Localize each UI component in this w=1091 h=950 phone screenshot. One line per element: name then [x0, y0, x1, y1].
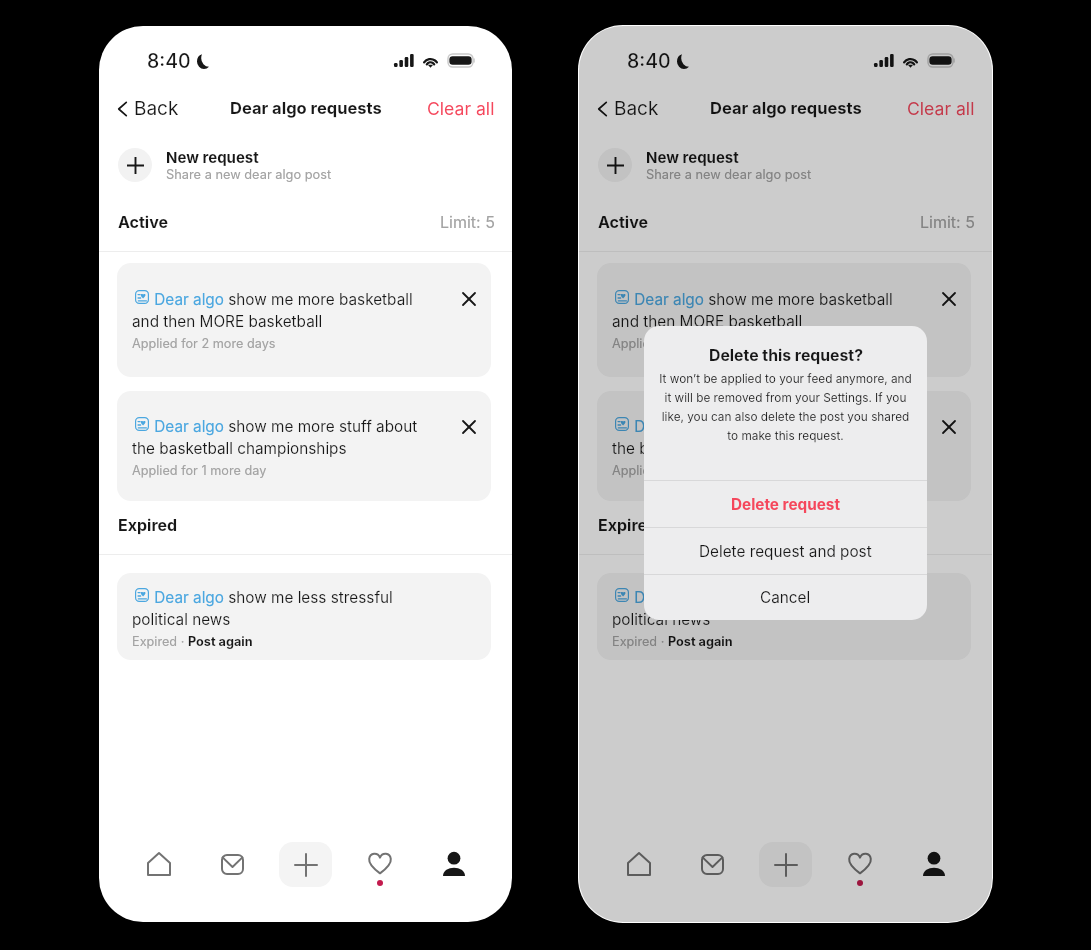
button[interactable]: Profile: [910, 840, 958, 888]
staticText: Expired · Post again: [612, 634, 733, 649]
button[interactable]: Delete request: [445, 286, 491, 312]
button[interactable]: Messages: [688, 840, 736, 888]
staticText: Active: [118, 212, 169, 231]
staticText: Delete request: [731, 495, 841, 514]
staticText: Clear all: [427, 98, 495, 119]
staticText: Applied for 1 more day: [612, 463, 747, 478]
staticText: Expired: [118, 515, 178, 534]
button[interactable]: Home: [135, 840, 183, 888]
staticText: It won’t be applied to your feed anymore…: [658, 372, 913, 443]
button[interactable]: Delete request and post: [644, 528, 927, 574]
staticText: 8:40: [147, 49, 191, 73]
staticText: Dear algo requests: [230, 98, 382, 118]
button[interactable]: [] Dear algo show me less stressful poli…: [597, 573, 971, 660]
staticText: Share a new dear algo post: [166, 167, 332, 182]
staticText: Limit: 5: [440, 212, 495, 231]
staticText: Applied for 2 more days: [132, 336, 276, 351]
button[interactable]: Delete request: [925, 414, 971, 440]
button[interactable]: Back: [579, 89, 669, 128]
staticText: Expired: [598, 515, 658, 534]
staticText: Dear algo requests: [710, 98, 862, 118]
staticText: Delete this request?: [709, 346, 863, 365]
button[interactable]: Activity: [836, 845, 884, 893]
button[interactable]: Profile: [430, 840, 478, 888]
button[interactable]: Delete request: [445, 414, 491, 440]
button[interactable]: Cancel: [644, 575, 927, 620]
staticText: Clear all: [907, 98, 975, 119]
staticText: New request: [646, 148, 739, 166]
button[interactable]: Clear all: [417, 90, 512, 127]
staticText: Back: [614, 97, 659, 120]
button[interactable]: New request: [579, 135, 992, 195]
staticText: Cancel: [760, 588, 811, 607]
staticText: [] Dear algo show me more basketball and…: [132, 290, 437, 331]
button[interactable]: [] Dear algo show me more stuff about th…: [597, 391, 971, 501]
staticText: Active: [598, 212, 649, 231]
staticText: [] Dear algo show me more stuff about th…: [132, 417, 437, 458]
staticText: Back: [134, 97, 179, 120]
staticText: Limit: 5: [920, 212, 975, 231]
button[interactable]: Back: [99, 89, 189, 128]
staticText: 8:40: [627, 49, 671, 73]
staticText: Applied for 2 more days: [612, 336, 756, 351]
staticText: [] Dear algo show me more basketball and…: [612, 290, 917, 331]
button[interactable]: Delete request: [644, 481, 927, 527]
staticText: [] Dear algo show me less stressful poli…: [132, 588, 437, 629]
staticText: New request: [166, 148, 259, 166]
staticText: Share a new dear algo post: [646, 167, 812, 182]
staticText: Delete request and post: [699, 542, 872, 561]
button[interactable]: Delete request: [925, 286, 971, 312]
button[interactable]: Create: [759, 842, 812, 887]
button[interactable]: [] Dear algo show me more basketball and…: [597, 263, 971, 377]
button[interactable]: Create: [279, 842, 332, 887]
staticText: Applied for 1 more day: [132, 463, 267, 478]
staticText: [] Dear algo show me more stuff about th…: [612, 417, 917, 458]
button[interactable]: Messages: [208, 840, 256, 888]
button[interactable]: [] Dear algo show me more basketball and…: [117, 263, 491, 377]
staticText: [] Dear algo show me less stressful poli…: [612, 588, 917, 629]
button[interactable]: Home: [615, 840, 663, 888]
button[interactable]: Activity: [356, 845, 404, 893]
button[interactable]: New request: [99, 135, 512, 195]
button[interactable]: [] Dear algo show me less stressful poli…: [117, 573, 491, 660]
button[interactable]: Clear all: [897, 90, 992, 127]
staticText: Expired · Post again: [132, 634, 253, 649]
button[interactable]: [] Dear algo show me more stuff about th…: [117, 391, 491, 501]
